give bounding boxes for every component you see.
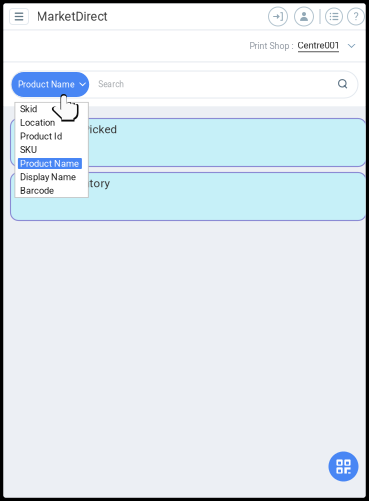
staticText: Receive Inventory <box>21 176 109 190</box>
staticText: MarketDirect <box>36 9 107 24</box>
button[interactable]: Product Name <box>15 157 88 170</box>
button[interactable]: Menu <box>9 8 28 24</box>
staticText: Centre001 <box>297 40 339 51</box>
button[interactable]: Display Name <box>15 170 88 184</box>
button[interactable]: Product Id <box>15 129 88 143</box>
button[interactable]: Sign in <box>268 7 287 26</box>
button[interactable]: Receive Inventory <box>10 172 366 220</box>
button[interactable]: Search <box>338 79 349 90</box>
button[interactable]: Lists <box>325 8 342 25</box>
staticText: Print Shop : <box>249 41 293 51</box>
staticText: Product Id <box>20 131 62 142</box>
staticText: Product Name <box>18 79 75 90</box>
button[interactable]: Account <box>294 7 313 26</box>
staticText: Skid <box>20 104 37 114</box>
staticText: Location <box>20 117 55 128</box>
staticText: Display Name <box>20 172 76 182</box>
button[interactable]: Items to be Picked <box>10 118 366 166</box>
staticText: Items to be Picked <box>21 122 116 136</box>
button[interactable]: Search field selector <box>11 72 89 97</box>
staticText: SKU <box>20 144 37 155</box>
button[interactable]: Location <box>15 116 88 129</box>
staticText: Barcode <box>20 185 54 196</box>
button[interactable]: Help <box>347 8 364 25</box>
staticText: Product Name <box>20 158 79 169</box>
staticText: ? <box>353 10 358 23</box>
button[interactable]: Skid <box>15 102 88 116</box>
button[interactable]: Barcode <box>15 184 88 197</box>
button[interactable]: Change print shop <box>293 40 355 52</box>
staticText: Search <box>98 80 124 89</box>
button[interactable]: SKU <box>15 143 88 157</box>
button[interactable]: Scan barcode <box>328 451 358 481</box>
